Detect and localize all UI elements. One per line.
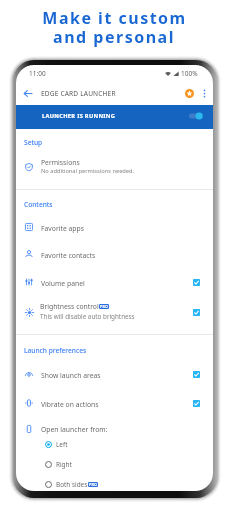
button[interactable]: Right <box>45 456 155 472</box>
button[interactable]: More options <box>197 86 212 101</box>
staticText: Right <box>56 460 72 469</box>
staticText: EDGE CARD LAUNCHER <box>41 89 116 98</box>
button[interactable]: Launcher toggle <box>189 109 209 123</box>
staticText: Setup <box>24 138 43 147</box>
staticText: PRO <box>100 304 108 309</box>
staticText: Brightness control <box>40 302 99 311</box>
button[interactable]: LAUNCHER IS RUNNING <box>16 105 213 129</box>
staticText: PRO <box>89 482 97 487</box>
staticText: Vibrate on actions <box>41 400 99 409</box>
button[interactable]: Left <box>45 436 155 452</box>
button[interactable]: Toggle <box>189 305 203 319</box>
button[interactable]: Toggle <box>189 367 203 381</box>
button[interactable]: Toggle <box>189 396 203 410</box>
staticText: This will disable auto brightness <box>40 312 135 321</box>
staticText: Favorite apps <box>41 224 84 233</box>
button[interactable]: Upgrade to pro <box>182 86 197 101</box>
button[interactable]: Favorite contacts <box>41 250 191 261</box>
staticText: Left <box>56 440 68 449</box>
staticText: Open launcher from: <box>41 425 108 434</box>
staticText: Show launch areas <box>41 371 101 380</box>
button[interactable]: Show launch areas <box>41 370 191 381</box>
staticText: Permissions <box>41 158 80 167</box>
staticText: Contents <box>24 200 53 209</box>
staticText: Both sides <box>56 480 88 489</box>
button[interactable]: Both sides <box>45 476 155 491</box>
button[interactable]: Vibrate on actions <box>41 399 191 410</box>
staticText: and personal <box>53 26 175 48</box>
staticText: 100% <box>181 69 198 78</box>
button[interactable]: Volume panel <box>41 278 191 289</box>
staticText: Launch preferences <box>24 346 87 355</box>
staticText: Volume panel <box>41 279 85 288</box>
staticText: Make it custom <box>42 7 187 29</box>
button[interactable]: Back <box>20 86 35 101</box>
button[interactable]: Toggle <box>189 275 203 289</box>
staticText: Favorite contacts <box>41 251 96 260</box>
staticText: 11:00 <box>29 69 46 78</box>
staticText: No additional permissions needed. <box>41 167 135 175</box>
staticText: LAUNCHER IS RUNNING <box>42 112 116 120</box>
button[interactable]: Favorite apps <box>41 223 191 234</box>
button[interactable]: Open launcher from: <box>41 424 191 435</box>
